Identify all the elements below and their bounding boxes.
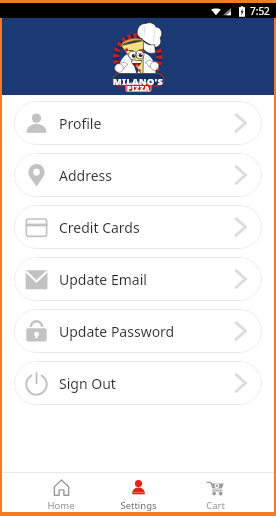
button[interactable]: Credit Cards <box>14 205 262 249</box>
button[interactable]: Profile <box>14 101 262 145</box>
button[interactable]: Sign Out <box>14 361 262 405</box>
button[interactable]: Update Email <box>14 257 262 301</box>
staticText: Cart <box>206 499 225 512</box>
staticText: Credit Cards <box>59 218 140 237</box>
button[interactable]: Home <box>22 479 100 512</box>
staticText: Profile <box>59 114 102 133</box>
staticText: Address <box>59 166 112 185</box>
staticText: Sign Out <box>59 374 116 393</box>
staticText: PIZZA <box>127 84 150 94</box>
staticText: Settings <box>120 499 157 512</box>
button[interactable]: Cart <box>177 479 254 512</box>
staticText: Home <box>47 499 75 512</box>
button[interactable]: Address <box>14 153 262 197</box>
staticText: 7:52 <box>250 4 270 18</box>
staticText: Update Email <box>59 270 147 289</box>
button[interactable]: Settings <box>100 479 177 512</box>
button[interactable]: Update Password <box>14 309 262 353</box>
staticText: MILANO'S <box>113 75 164 87</box>
staticText: Update Password <box>59 322 175 341</box>
